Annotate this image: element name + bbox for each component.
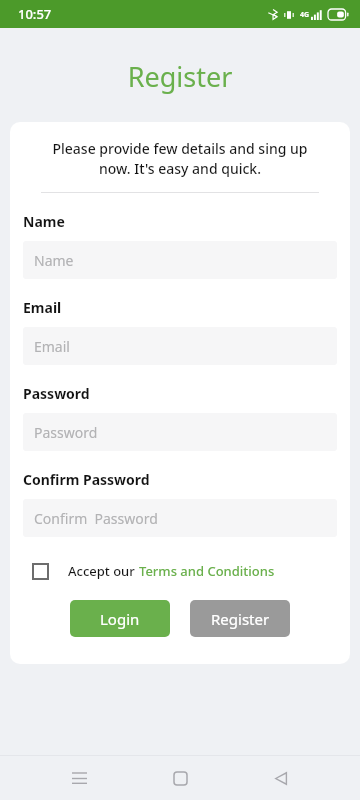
button[interactable]: Confirm Password	[23, 499, 337, 537]
staticText: 10:57	[18, 5, 52, 23]
button[interactable]: Name	[23, 241, 337, 279]
staticText: Password	[34, 423, 98, 442]
button[interactable]: Terms and Conditions	[139, 562, 275, 580]
button[interactable]: Back	[259, 756, 303, 800]
staticText: Email	[23, 298, 62, 317]
button[interactable]: Accept terms checkbox	[27, 558, 53, 584]
staticText: Password	[23, 384, 90, 403]
button[interactable]: Password	[23, 413, 337, 451]
staticText: Please provide few details and sing up n…	[23, 139, 337, 178]
staticText: Confirm Password	[23, 470, 150, 489]
staticText: Email	[34, 337, 70, 356]
staticText: Terms and Conditions	[139, 562, 275, 580]
staticText: Name	[34, 251, 74, 270]
staticText: Register	[0, 58, 360, 95]
button[interactable]: Register	[190, 600, 290, 637]
staticText: Confirm Password	[34, 509, 158, 528]
staticText: Register	[211, 609, 270, 629]
button[interactable]: Email	[23, 327, 337, 365]
staticText: Accept our	[68, 562, 139, 580]
button[interactable]: Recent apps	[57, 756, 101, 800]
button[interactable]: Login	[70, 600, 170, 637]
staticText: Login	[100, 609, 140, 629]
button[interactable]: Home	[158, 756, 202, 800]
staticText: 4G	[300, 10, 310, 20]
staticText: Name	[23, 212, 65, 231]
